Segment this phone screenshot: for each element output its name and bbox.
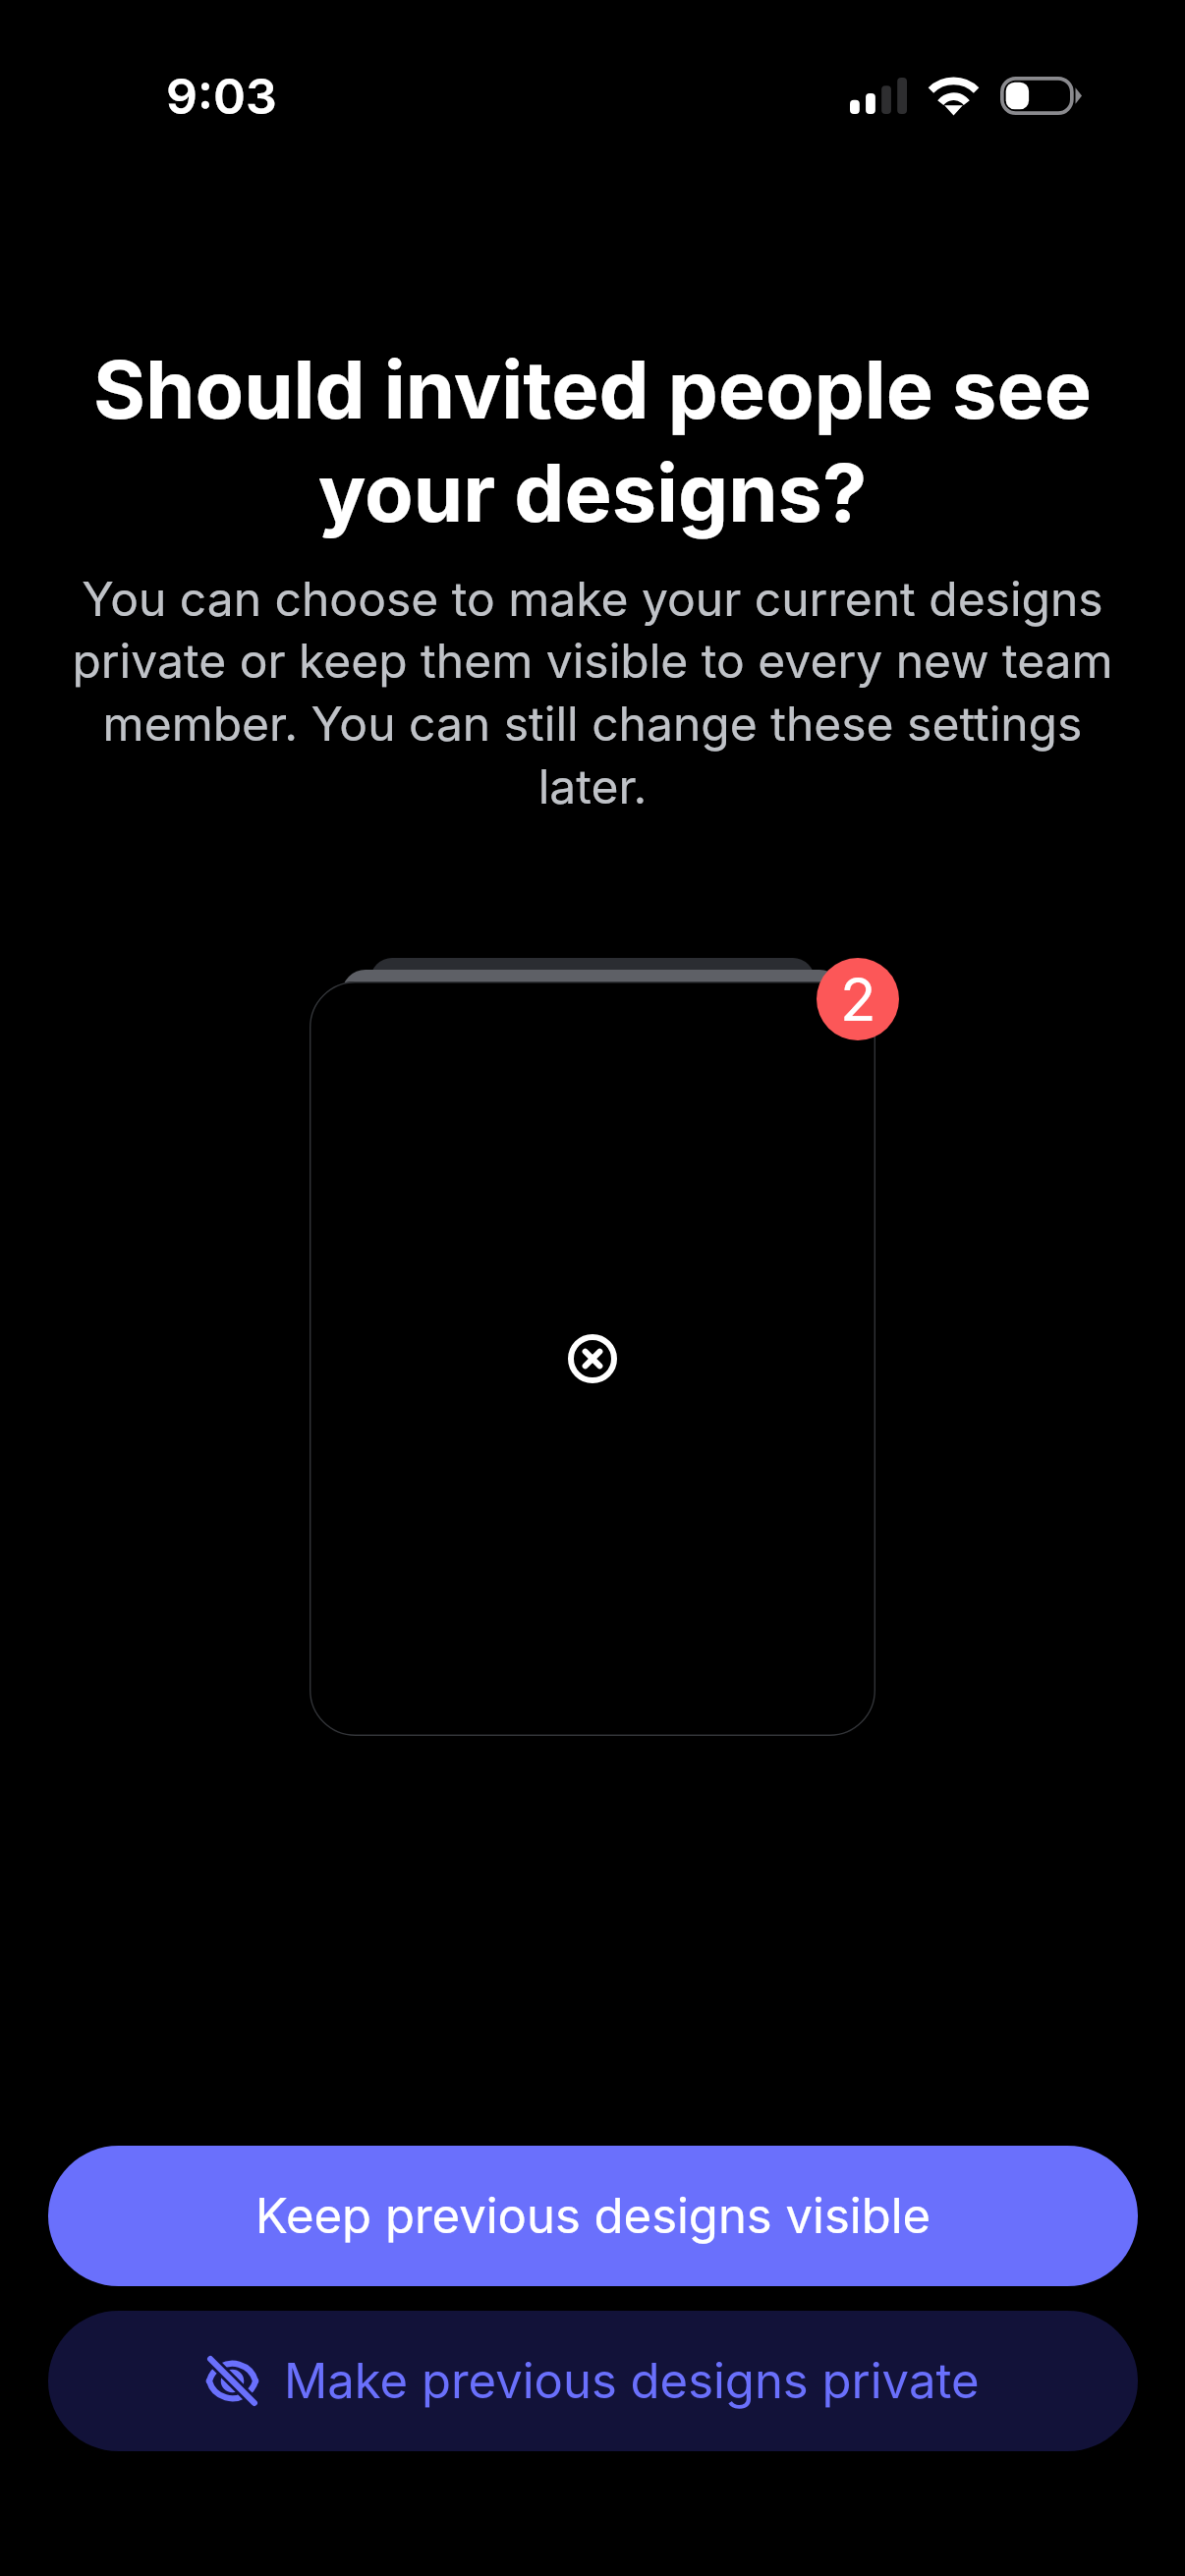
button[interactable]: Keep previous designs visible bbox=[48, 2146, 1138, 2286]
staticText: You can choose to make your current desi… bbox=[57, 570, 1128, 815]
staticText: Keep previous designs visible bbox=[255, 2187, 931, 2245]
button[interactable]: Make previous designs private bbox=[48, 2311, 1138, 2451]
staticText: Make previous designs private bbox=[284, 2352, 980, 2410]
staticText: 9:03 bbox=[166, 67, 277, 126]
staticText: 2 bbox=[840, 964, 876, 1036]
staticText: Should invited people see your designs? bbox=[59, 342, 1126, 541]
